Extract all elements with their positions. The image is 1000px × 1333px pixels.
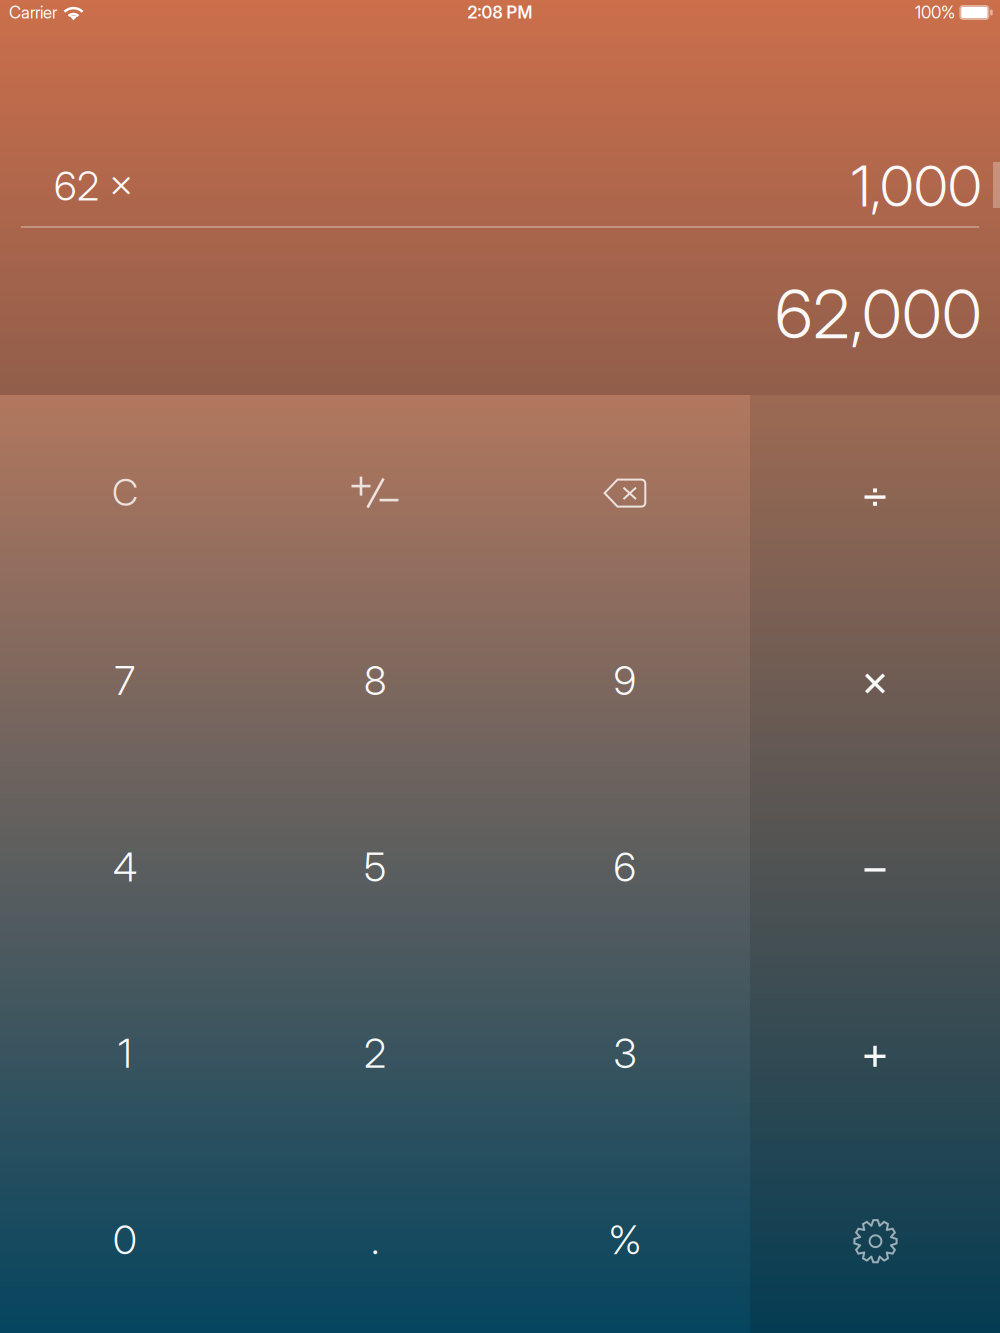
button[interactable]: 9 [500, 587, 750, 774]
staticText: C [112, 469, 138, 515]
staticText: 2 [364, 1029, 386, 1077]
button[interactable]: . [250, 1146, 500, 1333]
button[interactable]: Multiply [750, 587, 1000, 774]
staticText: 5 [364, 843, 386, 891]
button[interactable]: C [0, 401, 250, 587]
staticText: . [371, 1215, 379, 1264]
staticText: 62,000 [775, 274, 982, 354]
button[interactable]: Divide [750, 401, 1000, 587]
staticText: 3 [613, 1029, 636, 1077]
staticText: 2:08 PM [467, 2, 532, 23]
staticText: 100% [915, 2, 955, 23]
staticText: Carrier [9, 2, 57, 23]
button[interactable]: Plus minus [250, 401, 500, 587]
button[interactable]: % [500, 1146, 750, 1333]
staticText: 1 [118, 1029, 132, 1077]
button[interactable]: Add [750, 960, 1000, 1146]
staticText: 4 [113, 843, 137, 891]
staticText: 62 × [54, 162, 133, 210]
button[interactable]: 2 [250, 960, 500, 1146]
button[interactable]: 1 [0, 960, 250, 1146]
button[interactable]: 4 [0, 774, 250, 960]
button[interactable]: 6 [500, 774, 750, 960]
button[interactable]: 0 [0, 1146, 250, 1333]
staticText: 0 [113, 1215, 137, 1264]
button[interactable]: Subtract [750, 774, 1000, 960]
staticText: 9 [613, 656, 636, 705]
staticText: 6 [613, 843, 636, 891]
staticText: 1,000 [851, 152, 982, 220]
button[interactable]: 8 [250, 587, 500, 774]
staticText: 8 [364, 656, 386, 705]
button[interactable]: 7 [0, 587, 250, 774]
button[interactable]: Delete [500, 401, 750, 587]
staticText: % [608, 1215, 641, 1264]
staticText: 7 [114, 656, 135, 705]
button[interactable]: Settings [750, 1146, 1000, 1333]
button[interactable]: 3 [500, 960, 750, 1146]
button[interactable]: 5 [250, 774, 500, 960]
